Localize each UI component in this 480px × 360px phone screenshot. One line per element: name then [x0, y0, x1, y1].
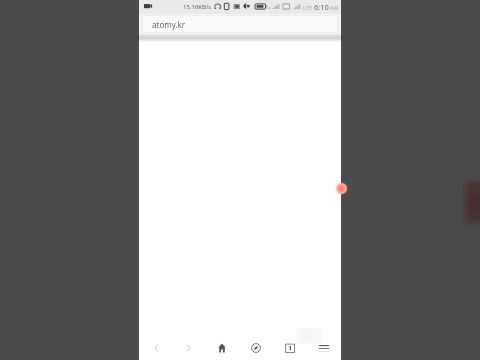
button[interactable]: Menu [307, 334, 341, 360]
staticText: AM [330, 4, 339, 11]
button[interactable]: Discover [239, 334, 273, 360]
staticText: 6:10 [314, 2, 329, 12]
staticText: atomy.kr [152, 19, 186, 30]
button[interactable]: atomy.kr [142, 15, 338, 33]
staticText: 15.16KB/s [183, 3, 212, 11]
button[interactable]: Back [139, 334, 172, 360]
staticText: LTE [303, 4, 312, 11]
button[interactable]: Floating action [335, 182, 348, 195]
button[interactable]: Home [205, 334, 239, 360]
button[interactable]: Tabs [273, 334, 307, 360]
button[interactable]: Forward [172, 334, 205, 360]
